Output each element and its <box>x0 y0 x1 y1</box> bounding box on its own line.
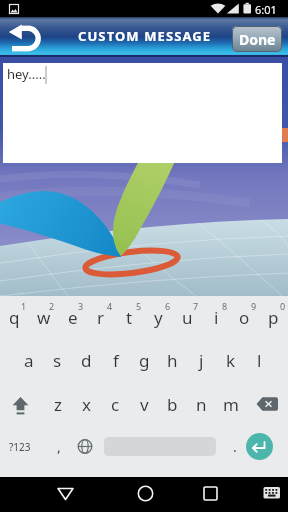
button[interactable]: ?123 <box>0 426 40 467</box>
staticText: 6 <box>165 300 171 312</box>
button[interactable]: g <box>130 339 159 382</box>
button[interactable]: s <box>43 339 72 382</box>
button[interactable]: x <box>72 383 101 426</box>
staticText: q <box>9 306 20 329</box>
button[interactable] <box>248 383 288 426</box>
button[interactable] <box>0 383 40 426</box>
button[interactable]: m <box>216 383 245 426</box>
staticText: 7 <box>193 300 199 312</box>
staticText: w <box>37 306 51 329</box>
staticText: e <box>68 306 78 329</box>
staticText: hey..... <box>7 65 46 83</box>
staticText: . <box>233 437 237 456</box>
button[interactable] <box>42 477 89 512</box>
staticText: , <box>57 437 61 456</box>
button[interactable] <box>187 477 234 512</box>
button[interactable]: b <box>158 383 187 426</box>
button[interactable]: k <box>216 339 245 382</box>
button[interactable]: c <box>101 383 130 426</box>
staticText: t <box>126 306 133 329</box>
button[interactable]: , <box>47 426 71 467</box>
staticText: f <box>113 349 119 372</box>
button[interactable]: p <box>259 296 288 338</box>
button[interactable]: f <box>101 339 130 382</box>
staticText: 8 <box>222 300 228 312</box>
staticText: 6:01 <box>255 2 277 17</box>
staticText: s <box>53 349 62 372</box>
button[interactable]: y <box>144 296 173 338</box>
button[interactable]: e <box>58 296 87 338</box>
button[interactable] <box>122 477 169 512</box>
staticText: k <box>226 349 236 372</box>
staticText: a <box>24 349 34 372</box>
button[interactable]: u <box>173 296 202 338</box>
staticText: 4 <box>107 300 113 312</box>
staticText: l <box>257 349 262 372</box>
button[interactable] <box>2 19 48 55</box>
button[interactable]: i <box>202 296 231 338</box>
button[interactable]: hey..... <box>3 63 282 163</box>
button[interactable]: q <box>0 296 29 338</box>
staticText: p <box>268 306 279 329</box>
staticText: 2 <box>49 300 55 312</box>
button[interactable] <box>71 426 99 467</box>
button[interactable]: Done <box>232 26 282 52</box>
button[interactable]: t <box>115 296 144 338</box>
button[interactable]: r <box>86 296 115 338</box>
staticText: b <box>167 393 178 416</box>
staticText: 5 <box>136 300 142 312</box>
button[interactable]: a <box>14 339 43 382</box>
staticText: r <box>97 306 105 329</box>
staticText: i <box>214 306 219 329</box>
button[interactable]: l <box>245 339 274 382</box>
staticText: z <box>54 393 62 416</box>
button[interactable]: w <box>29 296 58 338</box>
button[interactable]: o <box>230 296 259 338</box>
staticText: 1 <box>21 300 27 312</box>
staticText: ?123 <box>9 440 31 454</box>
staticText: CUSTOM MESSAGE <box>78 27 212 45</box>
staticText: n <box>196 393 207 416</box>
button[interactable]: . <box>224 426 246 467</box>
staticText: y <box>154 306 163 329</box>
staticText: x <box>82 393 91 416</box>
button[interactable]: h <box>158 339 187 382</box>
staticText: 9 <box>251 300 257 312</box>
staticText: v <box>140 393 149 416</box>
button[interactable]: n <box>187 383 216 426</box>
staticText: 3 <box>78 300 84 312</box>
staticText: g <box>139 349 150 372</box>
staticText: j <box>199 349 204 372</box>
button[interactable] <box>256 482 286 504</box>
staticText: Done <box>239 30 276 49</box>
button[interactable]: d <box>72 339 101 382</box>
button[interactable] <box>246 433 273 460</box>
button[interactable]: j <box>187 339 216 382</box>
staticText: h <box>167 349 178 372</box>
staticText: u <box>182 306 193 329</box>
staticText: c <box>111 393 120 416</box>
button[interactable]: z <box>43 383 72 426</box>
button[interactable]: v <box>130 383 159 426</box>
staticText: d <box>81 349 92 372</box>
staticText: o <box>239 306 250 329</box>
staticText: 0 <box>280 300 286 312</box>
staticText: m <box>223 393 239 416</box>
